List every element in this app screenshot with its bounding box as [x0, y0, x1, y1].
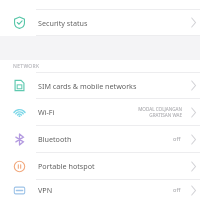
staticText: off [173, 186, 181, 194]
staticText: MODAL COLJANGAN [138, 106, 182, 112]
button[interactable]: Bluetooth [0, 126, 200, 152]
button[interactable]: Portable hotspot [0, 153, 200, 179]
button[interactable]: SIM cards & mobile networks [0, 73, 200, 98]
button[interactable]: Security status [0, 10, 200, 35]
staticText: VPN [38, 185, 173, 195]
staticText: SIM cards & mobile networks [38, 81, 186, 91]
staticText: off [173, 135, 181, 143]
staticText: Wi-Fi [38, 107, 138, 117]
staticText: Security status [38, 18, 186, 28]
staticText: Portable hotspot [38, 161, 186, 171]
staticText: Bluetooth [38, 134, 173, 144]
button[interactable]: Wi-Fi [0, 99, 200, 125]
staticText: GRATISAN WAE [149, 112, 182, 118]
staticText: NETWORK [13, 63, 40, 70]
button[interactable]: VPN [0, 180, 200, 200]
